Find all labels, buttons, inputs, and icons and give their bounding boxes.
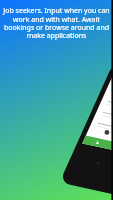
staticText: Job seekers. Input when you can work and… (1, 6, 112, 40)
